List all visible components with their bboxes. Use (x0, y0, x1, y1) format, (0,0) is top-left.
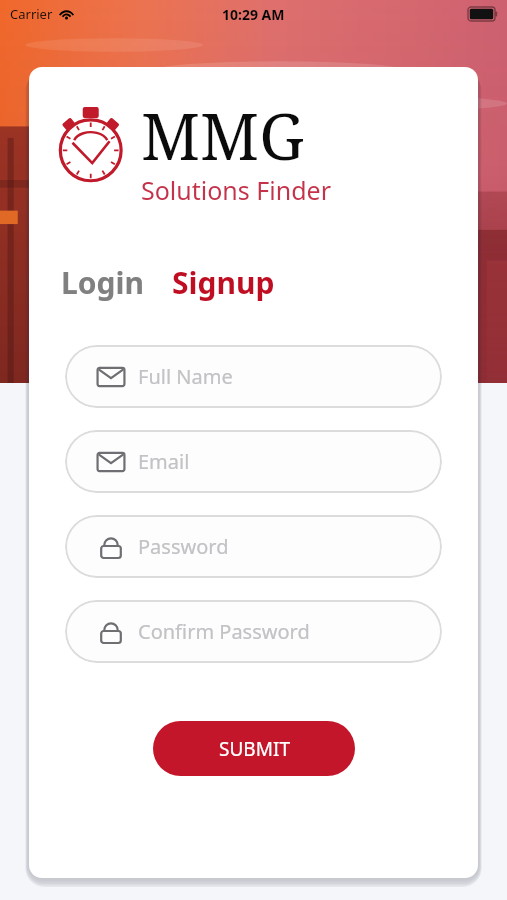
staticText: 10:29 AM (222, 5, 285, 24)
button[interactable]: Signup (170, 258, 277, 307)
staticText: Full Name (138, 363, 233, 390)
staticText: Carrier (10, 5, 53, 23)
staticText: Password (138, 533, 229, 560)
staticText: Confirm Password (138, 618, 310, 645)
staticText: SUBMIT (219, 736, 290, 762)
staticText: Signup (172, 262, 275, 303)
staticText: Email (138, 448, 190, 475)
button[interactable]: SUBMIT (153, 721, 355, 776)
button[interactable]: Password (65, 515, 442, 578)
staticText: Solutions Finder (141, 173, 331, 207)
button[interactable]: Email (65, 430, 442, 493)
button[interactable]: Confirm Password (65, 600, 442, 663)
button[interactable]: Login (59, 258, 146, 307)
staticText: MMG (141, 93, 305, 179)
button[interactable]: Full Name (65, 345, 442, 408)
staticText: Login (61, 262, 144, 303)
